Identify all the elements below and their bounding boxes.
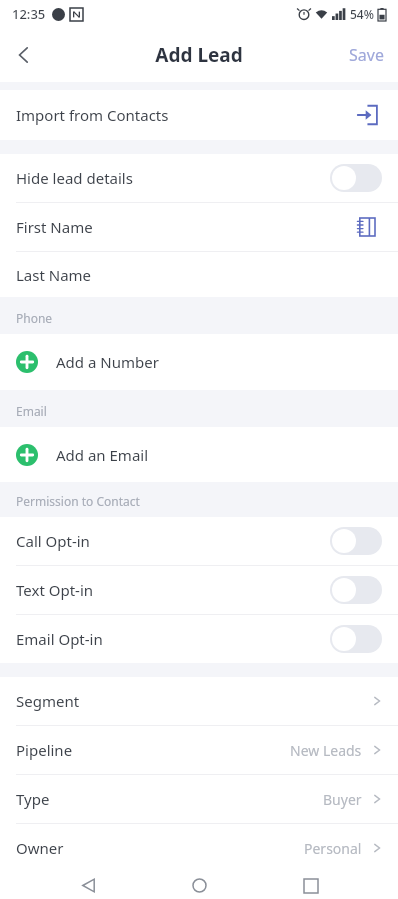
staticText: Email [16, 403, 47, 419]
button[interactable]: Last Name [0, 252, 398, 297]
staticText: Call Opt-in [16, 531, 330, 551]
button[interactable]: Back [0, 31, 48, 79]
button[interactable]: Add an Email [0, 427, 398, 482]
button[interactable]: Text Opt-in [0, 566, 398, 614]
button[interactable]: Import from Contacts [0, 90, 398, 140]
button[interactable]: Hide lead details [0, 154, 398, 202]
button[interactable]: First Name [0, 203, 398, 251]
button[interactable]: Toggle [330, 576, 382, 604]
button[interactable]: Home [175, 872, 223, 899]
button[interactable]: Pipeline [0, 726, 398, 774]
staticText: Text Opt-in [16, 580, 330, 600]
button[interactable]: Back [64, 872, 112, 899]
staticText: Import from Contacts [16, 105, 352, 125]
staticText: Hide lead details [16, 168, 330, 188]
button[interactable]: Import from Contacts [352, 100, 382, 130]
staticText: Owner [16, 838, 304, 858]
staticText: Add an Email [56, 445, 149, 465]
staticText: Type [16, 789, 323, 809]
button[interactable]: Toggle [330, 625, 382, 653]
button[interactable]: Pick contact [352, 212, 382, 242]
staticText: 54% [350, 6, 374, 22]
button[interactable]: Type [0, 775, 398, 823]
staticText: Permission to Contact [16, 493, 140, 509]
button[interactable]: Segment [0, 677, 398, 725]
button[interactable]: Email Opt-in [0, 615, 398, 663]
staticText: New Leads [290, 741, 362, 760]
button[interactable]: Add a Number [0, 334, 398, 390]
button[interactable]: Recent apps [287, 872, 335, 899]
button[interactable]: Call Opt-in [0, 517, 398, 565]
staticText: Save [349, 44, 384, 66]
staticText: Last Name [16, 265, 382, 285]
staticText: Personal [304, 839, 362, 858]
staticText: Buyer [323, 790, 362, 809]
button[interactable]: Toggle [330, 527, 382, 555]
button[interactable]: Save [335, 31, 398, 79]
staticText: Add a Number [56, 352, 159, 372]
button[interactable]: Owner [0, 824, 398, 872]
staticText: First Name [16, 217, 352, 237]
staticText: Segment [16, 691, 370, 711]
staticText: 12:35 [12, 5, 46, 23]
button[interactable]: Toggle [330, 164, 382, 192]
staticText: Email Opt-in [16, 629, 330, 649]
staticText: Pipeline [16, 740, 290, 760]
staticText: Phone [16, 310, 53, 326]
staticText: Add Lead [155, 42, 243, 68]
